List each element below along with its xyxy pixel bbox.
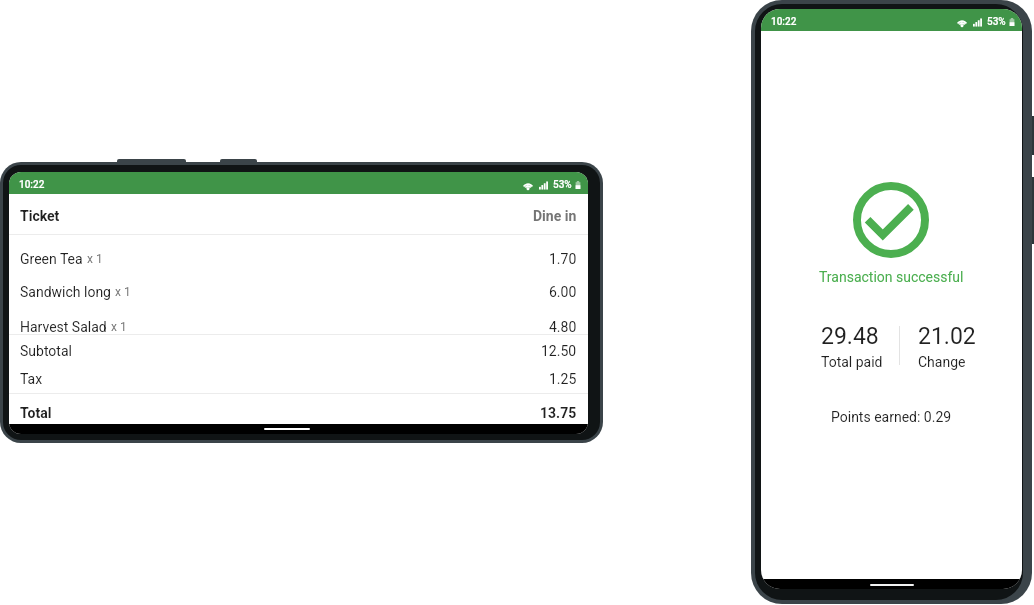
staticText: 13.75 <box>540 405 577 421</box>
staticText: 10:22 <box>19 179 45 191</box>
other: Battery 53 percent <box>1009 18 1015 26</box>
other: Transaction successful <box>853 182 929 258</box>
staticText: 29.48 <box>821 323 879 350</box>
other: Wi-Fi <box>522 181 534 190</box>
other: Cellular signal <box>973 18 982 27</box>
staticText: 6.00 <box>549 284 577 300</box>
staticText: Sandwich long <box>20 284 111 300</box>
staticText: Total paid <box>821 354 883 370</box>
other: Battery 53 percent <box>575 181 581 189</box>
staticText: Subtotal <box>20 343 72 359</box>
staticText: 1.70 <box>549 251 577 267</box>
staticText: x 1 <box>111 320 127 334</box>
button[interactable]: Tax <box>9 364 588 393</box>
staticText: 53% <box>987 16 1006 28</box>
button[interactable]: Subtotal <box>9 335 588 364</box>
staticText: 21.02 <box>918 323 976 350</box>
staticText: Points earned: 0.29 <box>831 409 952 425</box>
button[interactable]: Green Tea <box>9 235 588 269</box>
staticText: Harvest Salad <box>20 319 107 335</box>
staticText: Green Tea <box>20 251 83 267</box>
staticText: 1.25 <box>549 371 577 387</box>
button[interactable]: Total <box>9 394 588 423</box>
staticText: 12.50 <box>541 343 577 359</box>
button[interactable]: Ticket <box>9 194 588 234</box>
staticText: Change <box>918 354 966 370</box>
staticText: Total <box>20 405 52 421</box>
staticText: 53% <box>553 179 572 191</box>
button[interactable]: Harvest Salad <box>9 303 588 334</box>
staticText: Tax <box>20 371 43 387</box>
button[interactable]: Sandwich long <box>9 269 588 303</box>
staticText: 10:22 <box>771 16 797 28</box>
staticText: 4.80 <box>549 319 577 335</box>
staticText: x 1 <box>115 285 131 299</box>
staticText: Transaction successful <box>819 269 964 285</box>
staticText: x 1 <box>87 252 103 266</box>
other: Wi-Fi <box>956 18 968 27</box>
staticText: Ticket <box>20 208 60 224</box>
staticText: Dine in <box>533 208 577 224</box>
other: Cellular signal <box>539 181 548 190</box>
